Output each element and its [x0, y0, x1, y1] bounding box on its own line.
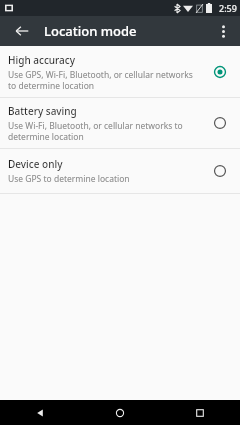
button[interactable]: Recent apps: [160, 400, 240, 425]
button[interactable]: High accuracy: [0, 46, 240, 97]
button[interactable]: Device only: [0, 149, 240, 193]
button[interactable]: Battery saving: [0, 98, 240, 148]
button[interactable]: Back: [8, 17, 36, 45]
staticText: Location mode: [44, 22, 137, 40]
button[interactable]: Home: [80, 400, 160, 425]
staticText: Battery saving: [8, 104, 77, 118]
button[interactable]: Back: [0, 400, 80, 425]
staticText: Device only: [8, 157, 63, 171]
staticText: Use GPS to determine location: [8, 173, 130, 185]
staticText: High accuracy: [8, 53, 75, 67]
staticText: 2:59: [219, 2, 237, 14]
staticText: Use Wi-Fi, Bluetooth, or cellular networ…: [8, 120, 202, 142]
button[interactable]: More options: [210, 18, 236, 44]
staticText: Use GPS, Wi-Fi, Bluetooth, or cellular n…: [8, 69, 202, 91]
